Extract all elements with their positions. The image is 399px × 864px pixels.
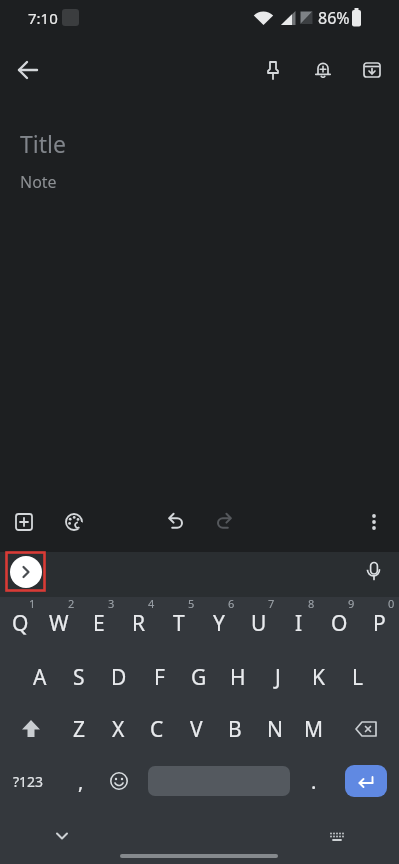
button[interactable] [99,758,139,804]
staticText: Q [12,609,29,638]
button[interactable]: A [21,654,59,700]
button[interactable]: W [40,600,78,646]
staticText: B [228,715,242,744]
button[interactable] [354,502,394,542]
staticText: D [111,663,127,692]
staticText: S [73,663,85,692]
staticText: 7:10 [28,8,58,28]
button[interactable] [317,822,357,852]
button[interactable]: . [295,758,333,804]
staticText: K [312,663,325,692]
button[interactable] [148,766,290,796]
button[interactable] [6,552,46,592]
button[interactable]: L [339,654,377,700]
staticText: I [295,609,303,638]
button[interactable]: E [80,600,118,646]
staticText: Title [20,128,66,159]
staticText: Note [20,171,57,193]
staticText: 8 [308,596,315,611]
button[interactable]: X [99,706,137,752]
button[interactable] [303,50,343,90]
button[interactable]: U [240,600,278,646]
button[interactable]: B [216,706,254,752]
staticText: 4 [148,596,155,611]
button[interactable] [42,821,82,851]
button[interactable]: V [177,706,215,752]
staticText: 2 [68,596,75,611]
staticText: U [251,609,267,638]
staticText: 3 [108,596,115,611]
button[interactable]: Y [200,600,238,646]
button[interactable]: Z [60,706,98,752]
staticText: , [78,768,84,795]
staticText: V [190,715,203,744]
button[interactable] [344,706,388,752]
staticText: 9 [348,596,355,611]
button[interactable]: G [180,654,218,700]
button[interactable]: P [360,600,398,646]
button[interactable] [4,502,44,542]
staticText: M [304,715,324,744]
button[interactable]: J [259,654,297,700]
staticText: W [49,609,69,638]
staticText: 6 [228,596,235,611]
button[interactable] [354,552,394,592]
staticText: X [112,715,125,744]
button[interactable] [156,502,196,542]
button[interactable] [345,765,387,797]
button[interactable]: R [120,600,158,646]
button[interactable]: K [299,654,337,700]
button[interactable]: Q [1,600,39,646]
staticText: 86% [318,7,350,29]
button[interactable] [204,502,244,542]
staticText: T [173,609,185,638]
button[interactable]: I [280,600,318,646]
staticText: ?123 [13,772,44,791]
staticText: A [33,663,47,692]
staticText: H [230,663,246,692]
staticText: C [150,715,164,744]
button[interactable]: ?123 [9,758,47,804]
staticText: . [311,768,317,795]
staticText: 0 [388,596,395,611]
staticText: 1 [29,596,36,611]
staticText: N [267,715,283,744]
staticText: P [373,609,386,638]
button[interactable] [54,502,94,542]
button[interactable]: H [219,654,257,700]
button[interactable]: N [256,706,294,752]
button[interactable]: F [140,654,178,700]
staticText: F [154,663,165,692]
button[interactable] [352,50,392,90]
staticText: G [191,663,207,692]
button[interactable]: S [60,654,98,700]
button[interactable]: M [295,706,333,752]
button[interactable]: C [138,706,176,752]
staticText: E [93,609,105,638]
button[interactable] [8,50,48,90]
staticText: O [331,609,348,638]
staticText: 7 [268,596,275,611]
staticText: 5 [188,596,195,611]
staticText: Z [73,715,86,744]
button[interactable] [9,706,53,752]
button[interactable]: D [100,654,138,700]
staticText: J [275,663,281,692]
button[interactable]: , [62,758,100,804]
staticText: Y [213,609,225,638]
button[interactable] [253,50,293,90]
button[interactable]: T [160,600,198,646]
button[interactable]: O [320,600,358,646]
staticText: L [352,663,364,692]
staticText: R [132,609,146,638]
